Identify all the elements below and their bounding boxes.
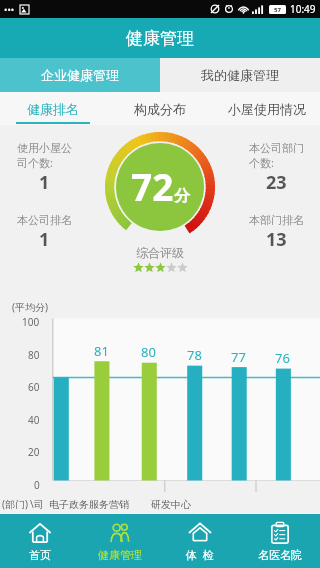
staticText: 60: [28, 380, 40, 394]
staticText: 76: [275, 349, 290, 367]
button[interactable]: 健康管理: [80, 514, 160, 568]
staticText: 名医名院: [258, 548, 302, 562]
staticText: (平均分): [12, 300, 48, 314]
staticText: 体 检: [186, 547, 214, 562]
staticText: 小屋使用情况: [228, 101, 306, 117]
staticText: 40: [28, 413, 40, 427]
staticText: \司 电子政务服务营销: [30, 497, 129, 511]
staticText: 0: [34, 478, 40, 492]
staticText: 80: [141, 343, 156, 361]
staticText: 77: [231, 348, 246, 366]
staticText: 13: [266, 227, 287, 252]
staticText: 本公司排名: [17, 213, 72, 227]
button[interactable]: 我的健康管理: [160, 58, 320, 92]
staticText: •••: [4, 3, 15, 15]
staticText: 本部门排名: [249, 213, 304, 227]
staticText: 健康管理: [126, 28, 194, 49]
staticText: 57: [274, 6, 281, 14]
button[interactable]: 小屋使用情况: [213, 92, 320, 125]
button[interactable]: 健康排名: [0, 92, 106, 125]
staticText: 健康管理: [98, 548, 142, 562]
staticText: 1: [39, 227, 50, 252]
staticText: 100: [22, 315, 40, 329]
staticText: 20: [28, 445, 40, 459]
staticText: 企业健康管理: [41, 67, 119, 83]
staticText: 使用小屋公 司个数:: [17, 141, 72, 170]
button[interactable]: 名医名院: [240, 514, 320, 568]
staticText: 80: [28, 348, 40, 362]
staticText: 我的健康管理: [201, 67, 279, 83]
button[interactable]: 企业健康管理: [0, 58, 160, 92]
staticText: 10:49: [290, 2, 316, 16]
staticText: 分: [174, 186, 190, 206]
button[interactable]: 首页: [0, 514, 80, 568]
staticText: 综合评级: [136, 245, 184, 260]
staticText: 研发中心: [151, 498, 191, 511]
staticText: 23: [266, 170, 287, 195]
staticText: 健康排名: [27, 101, 79, 117]
staticText: 81: [94, 342, 109, 360]
button[interactable]: 构成分布: [106, 92, 213, 125]
staticText: (部门): [2, 497, 28, 511]
staticText: 构成分布: [134, 101, 186, 117]
staticText: 首页: [29, 548, 51, 562]
staticText: 78: [187, 346, 202, 364]
staticText: 本公司部门 个数:: [249, 141, 304, 170]
staticText: 1: [39, 170, 50, 195]
button[interactable]: 体 检: [160, 514, 240, 568]
staticText: 72: [131, 161, 174, 211]
